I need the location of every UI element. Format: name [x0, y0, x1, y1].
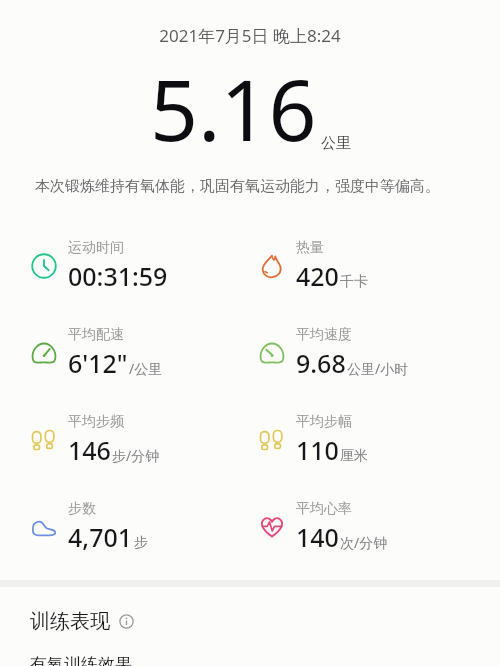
button[interactable]: 平均步幅: [250, 396, 500, 483]
staticText: 次/分钟: [340, 533, 388, 552]
staticText: 平均心率: [296, 500, 352, 518]
other: 平均步频: [30, 426, 58, 454]
staticText: 厘米: [340, 447, 368, 465]
staticText: 4,701: [68, 520, 133, 554]
staticText: 00:31:59: [68, 259, 168, 293]
other: 平均步幅: [258, 426, 286, 454]
staticText: 有氧训练效果: [30, 654, 132, 666]
button[interactable]: 步数: [0, 483, 250, 570]
button[interactable]: 热量: [250, 222, 500, 309]
other: 热量: [258, 252, 286, 280]
staticText: 2021年7月5日 晚上8:24: [0, 24, 500, 47]
button[interactable]: 平均步频: [0, 396, 250, 483]
other: Info: [119, 614, 134, 629]
staticText: 6'12": [68, 346, 128, 380]
staticText: 运动时间: [68, 239, 124, 257]
button[interactable]: 平均心率: [250, 483, 500, 570]
staticText: 本次锻炼维持有氧体能，巩固有氧运动能力，强度中等偏高。: [35, 177, 440, 196]
other: 步数: [30, 513, 58, 541]
other: 平均心率: [258, 513, 286, 541]
staticText: 420: [296, 259, 339, 293]
staticText: 步: [134, 534, 148, 552]
staticText: 平均速度: [296, 326, 352, 344]
button[interactable]: 平均配速: [0, 309, 250, 396]
staticText: 140: [296, 520, 339, 554]
staticText: 步数: [68, 500, 96, 518]
staticText: /公里: [129, 359, 163, 378]
staticText: 平均步幅: [296, 413, 352, 431]
staticText: 5.16: [150, 51, 317, 165]
staticText: 146: [68, 433, 111, 467]
staticText: 步/分钟: [112, 446, 160, 465]
staticText: 9.68: [296, 346, 346, 380]
other: 运动时间: [30, 252, 58, 280]
staticText: 千卡: [340, 273, 368, 291]
staticText: 110: [296, 433, 339, 467]
button[interactable]: 平均速度: [250, 309, 500, 396]
other: 平均配速: [30, 339, 58, 367]
staticText: 公里/小时: [347, 359, 409, 378]
button[interactable]: 训练表现: [0, 609, 500, 634]
other: 平均速度: [258, 339, 286, 367]
staticText: 平均配速: [68, 326, 124, 344]
staticText: 训练表现: [30, 609, 110, 634]
staticText: 热量: [296, 239, 324, 257]
button[interactable]: 运动时间: [0, 222, 250, 309]
staticText: 平均步频: [68, 413, 124, 431]
staticText: 公里: [321, 134, 351, 153]
